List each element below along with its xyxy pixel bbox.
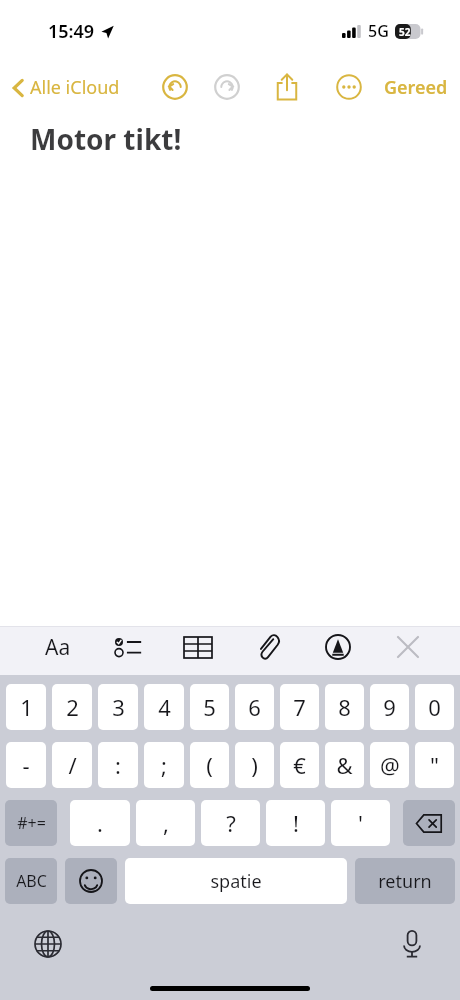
staticText: Gereed — [384, 75, 448, 100]
button[interactable]: Backspace — [403, 800, 455, 846]
button[interactable]: spatie — [125, 858, 347, 904]
button[interactable]: ? — [201, 800, 260, 846]
button[interactable]: ( — [190, 742, 229, 788]
staticText: ( — [206, 750, 213, 780]
staticText: / — [68, 750, 77, 780]
button[interactable]: Undo — [158, 70, 192, 104]
staticText: Motor tikt! — [30, 120, 182, 158]
button[interactable]: Alle iCloud — [8, 71, 124, 104]
staticText: 3 — [112, 692, 125, 722]
staticText: 9 — [383, 692, 396, 722]
button[interactable]: Aa — [38, 627, 78, 667]
staticText: ; — [161, 750, 167, 780]
button[interactable]: " — [415, 742, 454, 788]
staticText: @ — [380, 750, 400, 780]
staticText: 7 — [293, 692, 306, 722]
button[interactable]: Redo — [210, 70, 244, 104]
button[interactable]: Close keyboard — [388, 627, 428, 667]
staticText: 52 — [399, 25, 411, 39]
button[interactable]: 0 — [415, 684, 454, 730]
button[interactable]: More options — [332, 70, 366, 104]
button[interactable]: - — [6, 742, 46, 788]
button[interactable]: 4 — [144, 684, 184, 730]
staticText: ' — [358, 808, 363, 838]
staticText: spatie — [210, 869, 262, 894]
button[interactable]: 7 — [280, 684, 319, 730]
staticText: 0 — [428, 692, 441, 722]
button[interactable]: / — [52, 742, 92, 788]
staticText: ? — [226, 808, 236, 838]
staticText: & — [336, 750, 353, 780]
button[interactable]: Attach — [248, 627, 288, 667]
staticText: ! — [293, 808, 299, 838]
staticText: #+= — [17, 812, 46, 834]
button[interactable]: 3 — [98, 684, 138, 730]
staticText: 4 — [158, 692, 171, 722]
button[interactable]: : — [98, 742, 138, 788]
staticText: 2 — [66, 692, 79, 722]
staticText: . — [97, 808, 103, 838]
button[interactable]: € — [280, 742, 319, 788]
button[interactable]: Markup — [318, 627, 358, 667]
button[interactable]: 5 — [190, 684, 229, 730]
button[interactable]: & — [325, 742, 364, 788]
button[interactable]: 2 — [52, 684, 92, 730]
staticText: 6 — [248, 692, 261, 722]
staticText: € — [293, 750, 306, 780]
button[interactable]: @ — [370, 742, 409, 788]
staticText: Aa — [45, 633, 71, 662]
staticText: Alle iCloud — [30, 75, 120, 100]
button[interactable]: ; — [144, 742, 184, 788]
staticText: ) — [251, 750, 258, 780]
staticText: 5G — [368, 20, 389, 42]
staticText: - — [22, 750, 30, 780]
button[interactable]: Change keyboard language — [26, 922, 70, 966]
button[interactable]: 9 — [370, 684, 409, 730]
button[interactable]: ' — [331, 800, 390, 846]
button[interactable]: ABC — [5, 858, 57, 904]
staticText: return — [378, 869, 432, 894]
button[interactable]: Checklist — [108, 627, 148, 667]
staticText: : — [115, 750, 121, 780]
button[interactable]: ! — [266, 800, 325, 846]
button[interactable]: 1 — [6, 684, 46, 730]
button[interactable]: Gereed — [380, 71, 452, 104]
button[interactable]: Dictation — [390, 922, 434, 966]
button[interactable]: return — [355, 858, 455, 904]
staticText: 15:49 — [48, 19, 95, 44]
button[interactable]: Emoji — [65, 858, 117, 904]
button[interactable]: Share — [270, 70, 304, 104]
button[interactable]: , — [136, 800, 195, 846]
staticText: ABC — [16, 870, 47, 892]
button[interactable]: 8 — [325, 684, 364, 730]
staticText: , — [163, 808, 169, 838]
staticText: 1 — [20, 692, 33, 722]
staticText: 5 — [203, 692, 216, 722]
staticText: 8 — [338, 692, 351, 722]
button[interactable]: . — [70, 800, 130, 846]
staticText: " — [430, 750, 439, 780]
button[interactable]: Table — [178, 627, 218, 667]
button[interactable]: ) — [235, 742, 274, 788]
button[interactable]: 6 — [235, 684, 274, 730]
button[interactable]: #+= — [5, 800, 57, 846]
